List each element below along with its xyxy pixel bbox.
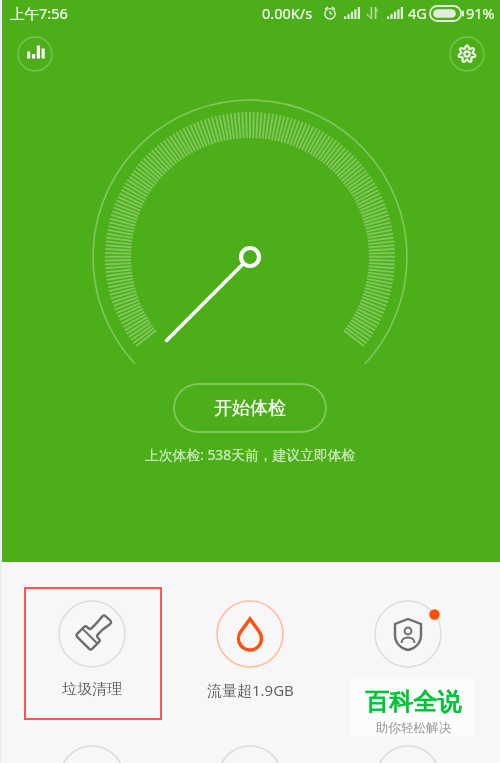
staticText: 流量超1.9GB: [207, 680, 294, 700]
staticText: 0.00K/s: [262, 3, 313, 23]
staticText: 上次体检: 538天前，建议立即体检: [145, 445, 356, 464]
button[interactable]: Data usage: [171, 562, 329, 712]
button[interactable]: Garbage cleanup: [13, 562, 171, 712]
button[interactable]: Statistics: [15, 34, 55, 74]
staticText: 垃圾清理: [62, 680, 122, 699]
staticText: 4G: [408, 3, 427, 23]
staticText: 百科全说: [365, 687, 461, 717]
staticText: 助你轻松解决: [376, 720, 451, 736]
button[interactable]: Settings: [447, 34, 487, 74]
button[interactable]: 开始体检: [173, 383, 327, 433]
staticText: 上午7:56: [10, 3, 68, 23]
staticText: 91%: [466, 3, 495, 23]
staticText: 开始体检: [214, 397, 286, 420]
button[interactable]: Security: [329, 562, 487, 712]
